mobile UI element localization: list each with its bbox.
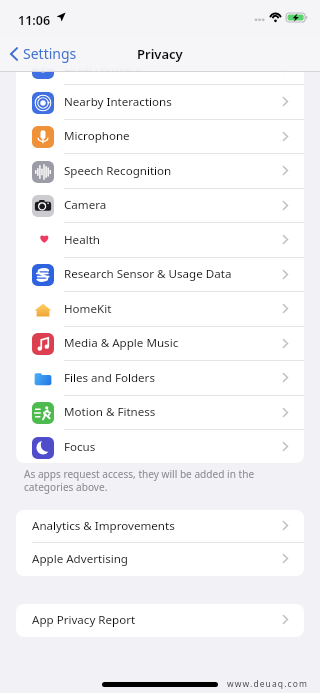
button[interactable]: Research Sensor & Usage Data (16, 258, 304, 292)
button[interactable]: Health (16, 223, 304, 258)
staticText: Analytics & Improvements (32, 518, 175, 534)
button[interactable]: Apple Advertising (16, 543, 304, 576)
staticText: Nearby Interactions (64, 94, 172, 110)
button[interactable]: Microphone (16, 120, 304, 154)
button[interactable]: HomeKit (16, 292, 304, 327)
button[interactable]: Nearby Interactions (16, 85, 304, 120)
staticText: Local Network (64, 59, 142, 75)
staticText: 11:06 (18, 12, 51, 29)
staticText: App Privacy Report (32, 612, 136, 628)
button[interactable]: Motion & Fitness (16, 396, 304, 430)
button[interactable]: Analytics & Improvements (16, 510, 304, 543)
button[interactable]: Local Network (16, 51, 304, 85)
button[interactable]: Camera (16, 189, 304, 223)
button[interactable]: App Privacy Report (16, 604, 304, 637)
staticText: Privacy (137, 45, 183, 63)
staticText: Files and Folders (64, 370, 155, 386)
staticText: Microphone (64, 128, 130, 144)
staticText: Camera (64, 197, 107, 213)
staticText: Motion & Fitness (64, 404, 156, 420)
staticText: Health (64, 232, 100, 248)
button[interactable]: Media & Apple Music (16, 327, 304, 361)
staticText: Media & Apple Music (64, 335, 179, 351)
staticText: HomeKit (64, 301, 112, 317)
staticText: Research Sensor & Usage Data (64, 266, 232, 282)
staticText: Settings (23, 44, 77, 63)
staticText: Apple Advertising (32, 551, 128, 567)
staticText: www.deuaq.com (227, 678, 309, 690)
staticText: As apps request access, they will be add… (24, 467, 258, 494)
button[interactable]: Files and Folders (16, 361, 304, 396)
staticText: Focus (64, 439, 96, 455)
button[interactable]: Settings (0, 40, 83, 67)
button[interactable]: Speech Recognition (16, 154, 304, 189)
button[interactable]: Focus (16, 430, 304, 463)
staticText: Speech Recognition (64, 163, 172, 179)
